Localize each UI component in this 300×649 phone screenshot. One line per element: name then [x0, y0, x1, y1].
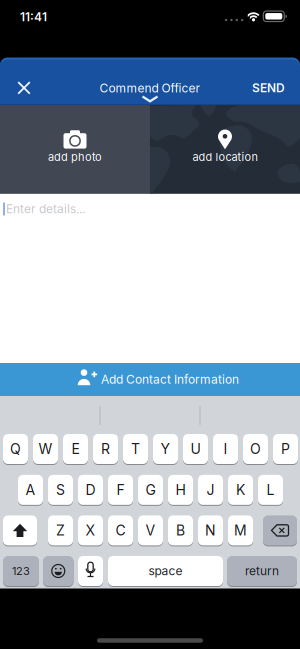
button[interactable]: T	[123, 434, 148, 464]
staticText: H	[175, 482, 185, 498]
button[interactable]: R	[93, 434, 118, 464]
staticText: Add Contact Information	[101, 372, 239, 387]
button[interactable]: E	[63, 434, 88, 464]
button[interactable]: Emoji	[43, 556, 73, 586]
staticText: SEND	[252, 81, 285, 95]
button[interactable]: X	[78, 515, 103, 545]
button[interactable]: Close	[15, 79, 33, 97]
button[interactable]: H	[168, 475, 193, 505]
button[interactable]: O	[243, 434, 268, 464]
staticText: P	[281, 441, 290, 457]
button[interactable]: S	[48, 475, 73, 505]
button[interactable]: N	[198, 515, 223, 545]
staticText: W	[38, 441, 52, 457]
button[interactable]: Dictate	[78, 556, 103, 586]
button[interactable]: K	[228, 475, 253, 505]
staticText: Enter details...	[6, 202, 85, 216]
staticText: V	[145, 522, 155, 539]
staticText: 123	[12, 564, 30, 577]
button[interactable]: SEND	[252, 81, 285, 95]
button[interactable]: return	[227, 556, 297, 586]
staticText: T	[131, 441, 140, 457]
staticText: S	[56, 482, 65, 498]
staticText: I	[223, 441, 227, 457]
button[interactable]: J	[198, 475, 223, 505]
staticText: space	[148, 564, 182, 578]
staticText: add photo	[48, 150, 102, 163]
staticText: M	[234, 522, 247, 539]
staticText: F	[116, 482, 124, 498]
staticText: U	[190, 441, 200, 457]
staticText: Q	[10, 441, 21, 457]
staticText: E	[71, 441, 79, 457]
button[interactable]: C	[108, 515, 133, 545]
button[interactable]: F	[108, 475, 133, 505]
button[interactable]: Q	[3, 434, 28, 464]
staticText: return	[245, 564, 279, 578]
staticText: N	[205, 522, 216, 539]
staticText: add location	[192, 150, 257, 163]
button[interactable]: D	[78, 475, 103, 505]
button[interactable]: Delete	[263, 515, 297, 545]
button[interactable]: L	[258, 475, 283, 505]
staticText: Y	[160, 441, 170, 457]
staticText: O	[250, 441, 261, 457]
button[interactable]: G	[138, 475, 163, 505]
button[interactable]: V	[138, 515, 163, 545]
button[interactable]: Shift	[3, 515, 37, 545]
staticText: D	[85, 482, 95, 498]
button[interactable]: space	[108, 556, 223, 586]
button[interactable]: P	[273, 434, 298, 464]
staticText: Commend Officer	[99, 81, 200, 95]
staticText: B	[176, 522, 185, 539]
button[interactable]: Z	[48, 515, 73, 545]
button[interactable]: U	[183, 434, 208, 464]
staticText: X	[85, 522, 95, 539]
button[interactable]: A	[18, 475, 43, 505]
staticText: R	[101, 441, 110, 457]
staticText: Z	[56, 522, 65, 539]
button[interactable]: Y	[153, 434, 178, 464]
button[interactable]: W	[33, 434, 58, 464]
staticText: K	[236, 482, 245, 498]
staticText: A	[25, 482, 35, 498]
button[interactable]: B	[168, 515, 193, 545]
button[interactable]: add photo	[0, 105, 150, 193]
button[interactable]: add location	[150, 105, 300, 193]
button[interactable]: I	[213, 434, 238, 464]
staticText: 11:41	[20, 10, 47, 24]
staticText: G	[145, 482, 155, 498]
staticText: J	[206, 482, 214, 498]
staticText: L	[266, 482, 274, 498]
button[interactable]: Commend Officer	[95, 79, 205, 103]
staticText: C	[115, 522, 125, 539]
button[interactable]: Add Contact Information	[0, 363, 300, 396]
button[interactable]: M	[228, 515, 253, 545]
button[interactable]: Numbers	[3, 556, 39, 586]
